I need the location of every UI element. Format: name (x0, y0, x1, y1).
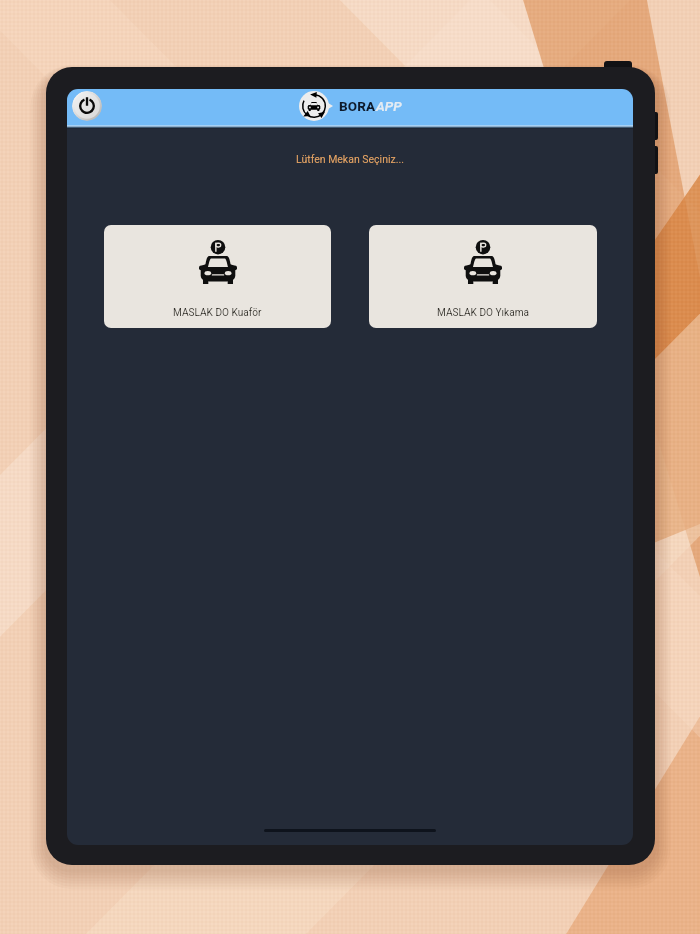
staticText: MASLAK DO Yıkama (437, 307, 530, 319)
staticText: Lütfen Mekan Seçiniz... (67, 153, 633, 165)
button[interactable]: Power (72, 91, 102, 121)
staticText: BORA (339, 98, 376, 114)
staticText: APP (376, 98, 402, 114)
staticText: MASLAK DO Kuaför (173, 307, 262, 319)
button[interactable]: MASLAK DO Kuaför (104, 225, 331, 328)
button[interactable]: MASLAK DO Yıkama (369, 225, 597, 328)
